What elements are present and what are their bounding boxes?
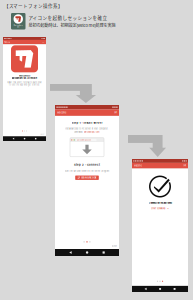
staticText: SKIP <box>183 165 186 167</box>
staticText: Barcode to PC Wi-Fi remote! <box>11 77 37 79</box>
staticText: Step 1 - Install server <box>71 121 102 124</box>
button[interactable]: Recents <box>174 288 175 290</box>
button[interactable]: SKIP <box>114 112 117 114</box>
staticText: SCAN QR CODE <box>81 176 96 179</box>
button[interactable]: Home <box>159 288 161 290</box>
staticText: Welcome <box>4 41 10 43</box>
button[interactable]: Back <box>69 251 72 254</box>
button[interactable]: NEXT <box>112 245 117 247</box>
staticText: Scan the QR Code shown in the server pro… <box>64 170 109 172</box>
staticText: Connection established <box>148 201 171 204</box>
staticText: SKIP <box>114 112 117 114</box>
button[interactable]: SCAN QR CODE <box>75 175 99 180</box>
button[interactable]: SKIP <box>42 41 45 43</box>
button[interactable]: NEXT <box>40 133 44 135</box>
button[interactable]: Back <box>144 288 147 290</box>
staticText: Step 2 - Connect <box>74 163 100 166</box>
button[interactable]: Recents <box>102 251 105 254</box>
staticText: Download: <box>74 131 83 133</box>
staticText: 【スマートフォン操作系】 <box>4 2 63 9</box>
staticText: PC <box>17 26 19 28</box>
button[interactable]: Home <box>86 251 88 254</box>
staticText: START SCANNING ➔ <box>151 207 169 210</box>
staticText: barcodetopc.com <box>84 131 100 133</box>
staticText: 最初の起動時は、初期設定(welcome)処理を実施 <box>28 22 115 28</box>
button[interactable]: SKIP <box>183 165 186 167</box>
staticText: Install Barcode to PC server in your com… <box>65 127 109 130</box>
button[interactable]: barcodetopc.com <box>84 131 100 133</box>
staticText: Barcode to <box>14 24 23 26</box>
staticText: barcodetopc.com <box>77 139 92 141</box>
staticText: SKIP <box>42 41 45 43</box>
staticText: Welcome to <box>19 74 30 77</box>
button[interactable]: Back <box>13 138 14 140</box>
staticText: to use the app and get started. <box>9 84 40 86</box>
staticText: Welcome <box>134 164 142 167</box>
staticText: NEXT <box>40 133 44 135</box>
staticText: NEXT <box>112 245 117 247</box>
staticText: アイコンを起動しセッションを確立 <box>28 14 107 21</box>
button[interactable]: START SCANNING ➔ <box>151 207 169 210</box>
staticText: Welcome <box>57 111 66 114</box>
staticText: Follow this short tutorial to learn how <box>7 81 42 84</box>
